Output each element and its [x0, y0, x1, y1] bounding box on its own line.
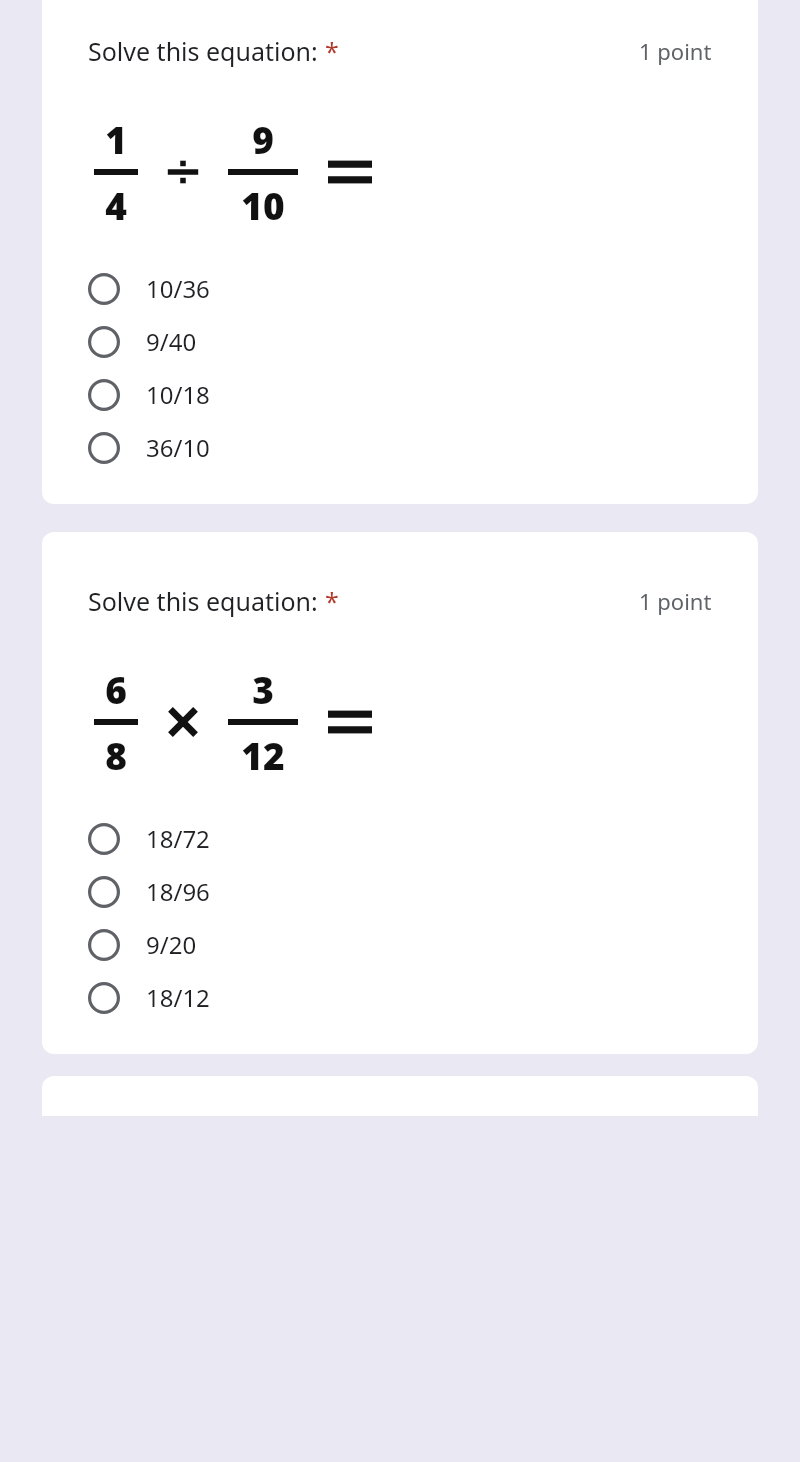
staticText: 9 — [252, 114, 274, 164]
staticText: 6 — [105, 664, 127, 714]
button[interactable]: 9/20 — [42, 918, 758, 971]
staticText: 10 — [241, 180, 285, 230]
button[interactable]: 18/72 — [42, 812, 758, 865]
staticText: 10/18 — [146, 378, 210, 411]
staticText: Solve this equation: — [88, 34, 318, 68]
staticText: 1 point — [639, 586, 712, 616]
staticText: * — [325, 584, 339, 618]
staticText: 12 — [241, 730, 285, 780]
staticText: 3 — [252, 664, 274, 714]
staticText: 4 — [105, 180, 127, 230]
button[interactable]: 18/96 — [42, 865, 758, 918]
staticText: 1 — [105, 114, 127, 164]
staticText: 10/36 — [146, 272, 210, 305]
staticText: 9/40 — [146, 325, 197, 358]
staticText: 18/96 — [146, 875, 210, 908]
staticText: 18/12 — [146, 981, 210, 1014]
staticText: 18/72 — [146, 822, 210, 855]
button[interactable]: 18/12 — [42, 971, 758, 1024]
staticText: * — [325, 34, 339, 68]
staticText: 8 — [105, 730, 127, 780]
staticText: 1 point — [639, 36, 712, 66]
button[interactable]: 9/40 — [42, 315, 758, 368]
button[interactable]: 36/10 — [42, 421, 758, 474]
staticText: 36/10 — [146, 431, 210, 464]
button[interactable]: 10/18 — [42, 368, 758, 421]
staticText: Solve this equation: — [88, 584, 318, 618]
staticText: 9/20 — [146, 928, 197, 961]
button[interactable]: 10/36 — [42, 262, 758, 315]
